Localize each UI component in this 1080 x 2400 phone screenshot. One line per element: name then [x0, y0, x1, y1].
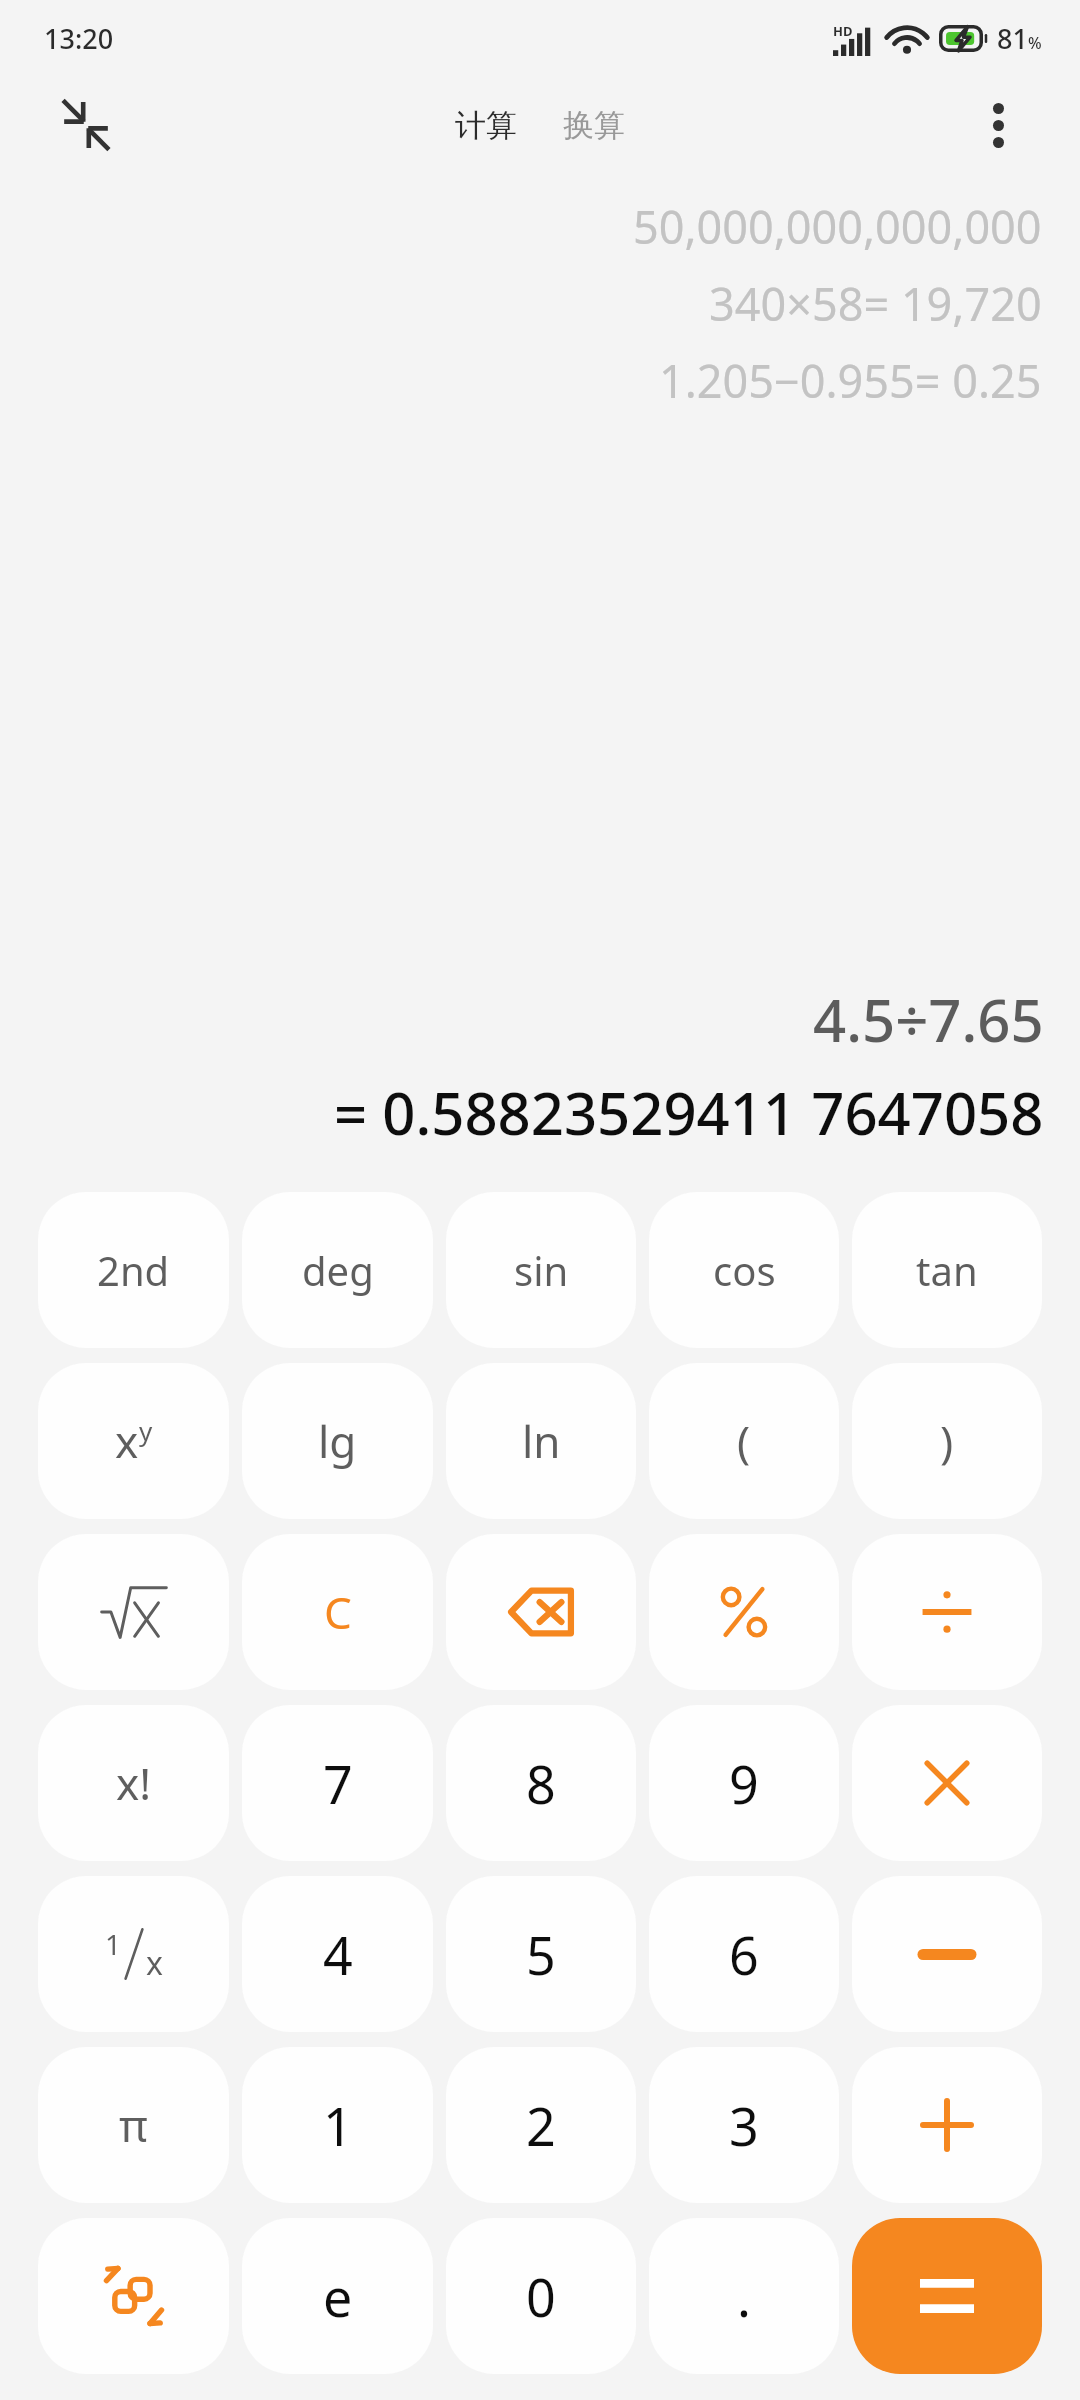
- button[interactable]: Unit converter: [38, 2218, 229, 2374]
- button[interactable]: 50,000,000,000,000: [633, 196, 1042, 257]
- button[interactable]: 2: [446, 2047, 636, 2203]
- button[interactable]: More options: [964, 91, 1032, 159]
- staticText: 7: [323, 1748, 353, 1819]
- button[interactable]: Plus: [852, 2047, 1042, 2203]
- button[interactable]: 计算: [445, 98, 527, 153]
- staticText: x: [115, 1411, 139, 1471]
- button[interactable]: Minus: [852, 1876, 1042, 2032]
- staticText: y: [139, 1413, 153, 1448]
- staticText: (: [737, 1411, 751, 1471]
- button[interactable]: (: [649, 1363, 839, 1519]
- staticText: 5: [526, 1919, 556, 1990]
- staticText: 1: [105, 1925, 122, 1963]
- button[interactable]: Reciprocal: [38, 1876, 229, 2032]
- button[interactable]: 8: [446, 1705, 636, 1861]
- button[interactable]: 1: [242, 2047, 433, 2203]
- button[interactable]: Square root: [38, 1534, 229, 1690]
- button[interactable]: 5: [446, 1876, 636, 2032]
- button[interactable]: .: [649, 2218, 839, 2374]
- staticText: 340×58= 19,720: [709, 273, 1042, 334]
- button[interactable]: ): [852, 1363, 1042, 1519]
- button[interactable]: deg: [242, 1192, 433, 1348]
- button[interactable]: x!: [38, 1705, 229, 1861]
- staticText: C: [324, 1582, 352, 1642]
- staticText: = 0.58823529411 7647058: [334, 1073, 1044, 1152]
- button[interactable]: C: [242, 1534, 433, 1690]
- staticText: e: [323, 2261, 353, 2332]
- button[interactable]: π: [38, 2047, 229, 2203]
- button[interactable]: 6: [649, 1876, 839, 2032]
- button[interactable]: 3: [649, 2047, 839, 2203]
- button[interactable]: 7: [242, 1705, 433, 1861]
- button[interactable]: Collapse: [48, 87, 124, 163]
- staticText: x: [146, 1941, 163, 1985]
- staticText: 4.5÷7.65: [813, 980, 1044, 1059]
- button[interactable]: 换算: [553, 98, 635, 153]
- staticText: lg: [318, 1411, 357, 1471]
- staticText: 2: [526, 2090, 556, 2161]
- staticText: 6: [729, 1919, 759, 1990]
- button[interactable]: x to the power of y: [38, 1363, 229, 1519]
- button[interactable]: cos: [649, 1192, 839, 1348]
- staticText: ): [940, 1411, 954, 1471]
- staticText: %: [1028, 32, 1042, 54]
- staticText: x!: [116, 1753, 152, 1813]
- button[interactable]: 1.205−0.955= 0.25: [659, 350, 1042, 411]
- staticText: 1: [323, 2090, 353, 2161]
- button[interactable]: Multiply: [852, 1705, 1042, 1861]
- staticText: sin: [514, 1243, 569, 1297]
- button[interactable]: Equals: [852, 2218, 1042, 2374]
- staticText: 0: [526, 2261, 556, 2332]
- staticText: 4: [323, 1919, 353, 1990]
- button[interactable]: 9: [649, 1705, 839, 1861]
- button[interactable]: e: [242, 2218, 433, 2374]
- button[interactable]: Percent: [649, 1534, 839, 1690]
- button[interactable]: tan: [852, 1192, 1042, 1348]
- button[interactable]: 4: [242, 1876, 433, 2032]
- button[interactable]: ln: [446, 1363, 636, 1519]
- button[interactable]: Divide: [852, 1534, 1042, 1690]
- staticText: .: [737, 2261, 751, 2332]
- button[interactable]: lg: [242, 1363, 433, 1519]
- staticText: π: [119, 2095, 148, 2155]
- staticText: 计算: [455, 106, 517, 145]
- staticText: HD: [833, 22, 853, 40]
- staticText: 9: [729, 1748, 759, 1819]
- staticText: 13:20: [44, 20, 114, 57]
- staticText: 1.205−0.955= 0.25: [659, 350, 1042, 411]
- staticText: deg: [302, 1243, 374, 1297]
- button[interactable]: Backspace: [446, 1534, 636, 1690]
- button[interactable]: 2nd: [38, 1192, 229, 1348]
- staticText: 3: [729, 2090, 759, 2161]
- staticText: cos: [713, 1243, 776, 1297]
- staticText: 50,000,000,000,000: [633, 196, 1042, 257]
- staticText: 2nd: [97, 1243, 170, 1297]
- button[interactable]: 340×58= 19,720: [709, 273, 1042, 334]
- button[interactable]: sin: [446, 1192, 636, 1348]
- staticText: 8: [526, 1748, 556, 1819]
- staticText: 换算: [563, 106, 625, 145]
- button[interactable]: 0: [446, 2218, 636, 2374]
- staticText: ln: [522, 1411, 561, 1471]
- staticText: tan: [916, 1243, 978, 1297]
- staticText: 81: [997, 20, 1028, 57]
